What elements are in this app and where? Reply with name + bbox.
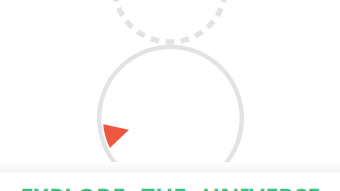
staticText: UNIVERSE bbox=[202, 181, 320, 191]
staticText: THE bbox=[141, 181, 186, 191]
staticText: EXPLORE bbox=[20, 181, 125, 191]
